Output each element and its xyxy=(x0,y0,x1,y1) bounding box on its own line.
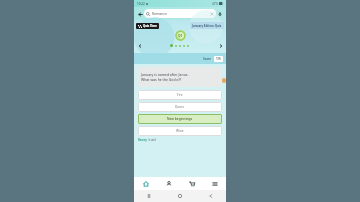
staticText: 1/5 xyxy=(216,57,221,61)
button[interactable]: January Edition Quiz xyxy=(190,22,224,29)
button[interactable]: Quiz Time xyxy=(136,23,159,29)
button[interactable]: New beginnings xyxy=(138,114,222,124)
staticText: Q1 xyxy=(178,34,183,38)
button[interactable]: Cart xyxy=(180,177,203,190)
staticText: 10:22 xyxy=(137,2,145,6)
button[interactable]: Wine xyxy=(138,126,222,136)
button[interactable]: Romance xyxy=(144,9,216,18)
staticText: Quiz Time xyxy=(143,24,157,28)
staticText: January is named after Janus. What was h… xyxy=(141,72,189,82)
staticText: Doors xyxy=(175,105,185,109)
button[interactable]: Home xyxy=(134,177,157,190)
staticText: January Edition Quiz xyxy=(192,24,222,28)
button[interactable]: Previous question xyxy=(136,42,143,49)
staticText: Romance xyxy=(152,11,167,16)
button[interactable]: Menu xyxy=(203,177,226,190)
staticText: it said xyxy=(148,138,156,142)
button[interactable]: Back xyxy=(195,190,226,202)
button[interactable]: Voice search xyxy=(216,10,224,18)
staticText: Wine xyxy=(176,129,184,133)
button[interactable]: Doors xyxy=(138,102,222,112)
button[interactable]: Fire xyxy=(138,90,222,100)
button[interactable]: Recents xyxy=(134,190,164,202)
staticText: Fire xyxy=(177,93,183,97)
staticText: Ronny xyxy=(138,138,147,142)
button[interactable]: Next question xyxy=(217,42,224,49)
staticText: Score xyxy=(203,57,212,61)
staticText: New beginnings xyxy=(167,117,193,121)
button[interactable]: Home xyxy=(164,190,195,202)
button[interactable]: Account xyxy=(157,177,180,190)
button[interactable]: Back xyxy=(136,10,144,18)
staticText: 47% xyxy=(212,2,218,6)
